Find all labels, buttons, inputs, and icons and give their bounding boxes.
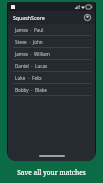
staticText: William	[34, 51, 50, 57]
staticText: Felix	[32, 75, 42, 81]
staticText: James	[15, 51, 28, 57]
staticText: -	[28, 75, 30, 81]
button[interactable]: James	[8, 48, 95, 60]
staticText: Paul	[34, 27, 44, 33]
staticText: Blake	[35, 87, 47, 93]
button[interactable]: Luke	[8, 72, 95, 84]
staticText: Lucas	[35, 63, 48, 69]
button[interactable]: Steve	[8, 36, 95, 48]
staticText: -	[30, 27, 32, 33]
staticText: -	[31, 87, 33, 93]
button[interactable]: Daniel	[8, 60, 95, 72]
staticText: -	[30, 51, 32, 57]
button[interactable]: Bobby	[8, 84, 95, 96]
staticText: Steve	[15, 39, 27, 45]
staticText: -	[29, 39, 31, 45]
staticText: Bobby	[15, 87, 29, 93]
staticText: James	[15, 27, 28, 33]
button[interactable]: James	[8, 24, 95, 36]
staticText: Save all your matches	[17, 168, 86, 177]
staticText: SquashScore	[13, 14, 45, 21]
staticText: Luke	[15, 75, 26, 81]
staticText: Daniel	[15, 63, 29, 69]
staticText: John	[33, 39, 43, 45]
staticText: -	[31, 63, 33, 69]
button[interactable]: Account	[83, 13, 92, 22]
